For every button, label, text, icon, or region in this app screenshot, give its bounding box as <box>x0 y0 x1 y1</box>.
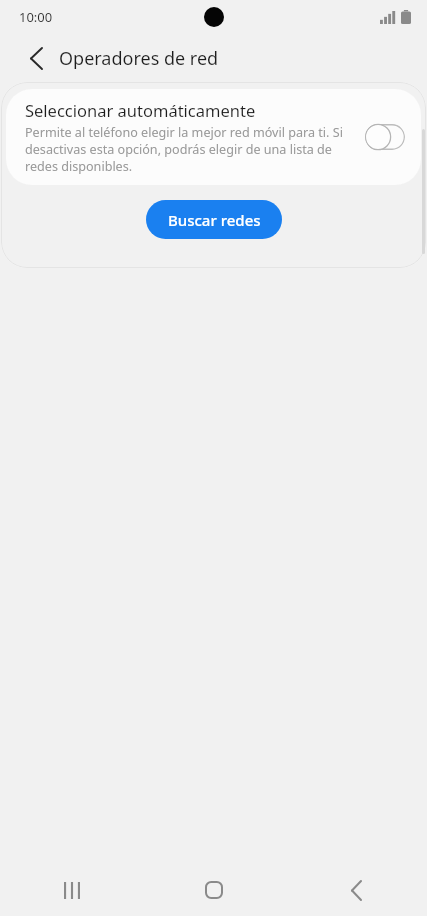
button[interactable]: Seleccionar automáticamente <box>6 89 421 185</box>
button[interactable]: Back <box>285 864 427 916</box>
button[interactable]: Buscar redes <box>146 200 282 239</box>
button[interactable]: Seleccionar automáticamente <box>365 123 405 151</box>
button[interactable]: Home <box>143 864 285 916</box>
staticText: Buscar redes <box>168 210 261 230</box>
staticText: Operadores de red <box>59 46 219 71</box>
staticText: Seleccionar automáticamente <box>25 99 256 121</box>
button[interactable]: Back <box>18 40 54 76</box>
button[interactable]: Recents <box>0 864 143 916</box>
staticText: 10:00 <box>19 8 53 26</box>
staticText: Permite al teléfono elegir la mejor red … <box>25 124 353 175</box>
